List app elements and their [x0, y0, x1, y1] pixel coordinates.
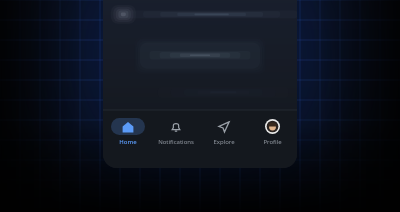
- staticText: Explore: [213, 138, 235, 146]
- button[interactable]: Notifications: [153, 118, 199, 146]
- staticText: Home: [119, 138, 137, 146]
- staticText: Profile: [263, 138, 282, 146]
- button[interactable]: Explore: [201, 118, 247, 146]
- button[interactable]: Home: [105, 118, 151, 146]
- staticText: Notifications: [158, 138, 194, 146]
- button[interactable]: Profile: [249, 118, 295, 146]
